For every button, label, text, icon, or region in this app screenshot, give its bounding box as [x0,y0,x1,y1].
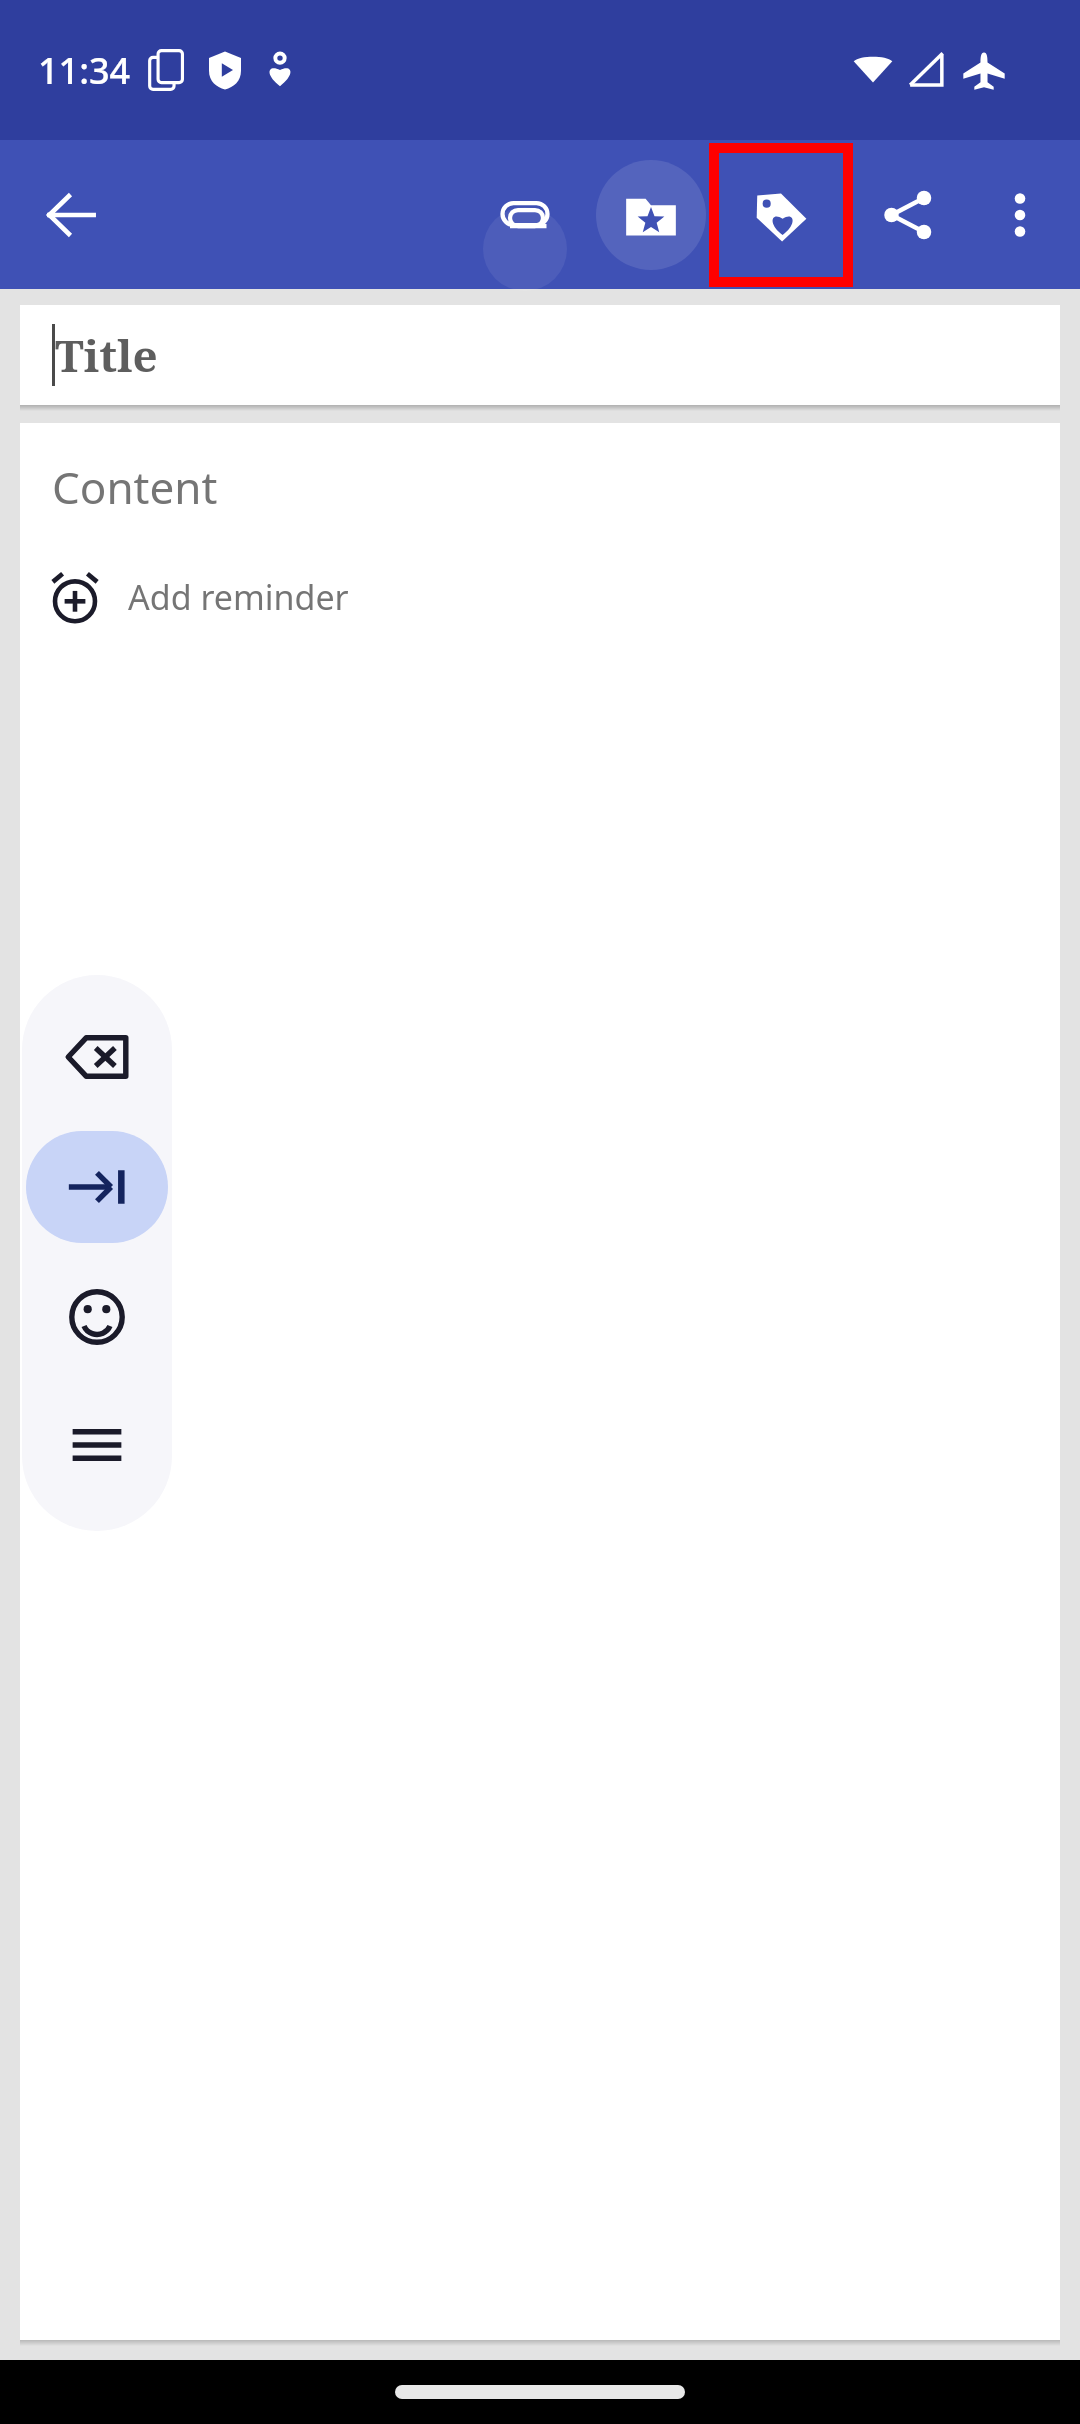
button[interactable]: Emoji [26,1261,168,1373]
button[interactable]: Add to notebook [588,152,714,278]
staticText: 11:34 [38,46,131,95]
button[interactable]: Content [20,423,1060,2340]
button[interactable]: Share [848,155,968,275]
staticText: Add reminder [128,574,349,620]
button[interactable]: Menu [26,1395,168,1495]
staticText: Title [55,325,158,385]
button[interactable]: Attach file [462,152,588,278]
button[interactable]: Backspace [26,1001,168,1113]
button[interactable]: More options [968,163,1072,267]
button[interactable]: Tab [26,1131,168,1243]
button[interactable]: Back [16,160,126,270]
button[interactable]: Labels [714,148,848,282]
button[interactable]: Add reminder [48,555,349,639]
button[interactable]: Title [20,305,1060,405]
staticText: Content [52,457,218,517]
